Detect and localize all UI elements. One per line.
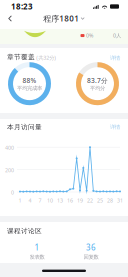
staticText: 1 — [18, 197, 21, 204]
staticText: 程序1801 — [43, 13, 79, 24]
staticText: 课程讨论区 — [7, 227, 42, 235]
staticText: 25 — [97, 197, 103, 204]
staticText: 13 — [57, 197, 63, 204]
staticText: 平均完成率 — [17, 85, 42, 91]
staticText: 0 — [11, 189, 14, 196]
staticText: 0人 — [113, 32, 121, 39]
staticText: 详情 — [110, 55, 120, 61]
staticText: 7 — [38, 197, 41, 204]
staticText: 详情 — [110, 124, 120, 130]
staticText: 200 — [5, 167, 14, 174]
button[interactable]: Back — [4, 13, 16, 24]
button[interactable]: 详情 — [109, 124, 121, 130]
staticText: 0% — [86, 32, 93, 39]
button[interactable]: 36 — [74, 242, 108, 260]
staticText: 回复数 — [83, 254, 98, 260]
staticText: 16 — [67, 197, 73, 204]
staticText: 22 — [87, 197, 93, 204]
staticText: (共32分) — [36, 54, 56, 61]
staticText: 本月访问量 — [7, 123, 42, 131]
button[interactable]: 程序1801 — [40, 11, 88, 26]
staticText: 83.7分 — [87, 76, 108, 85]
staticText: 10 — [47, 197, 53, 204]
staticText: 88% — [22, 76, 36, 85]
staticText: 36 — [86, 242, 96, 253]
staticText: 400 — [5, 144, 14, 151]
staticText: 18:23 — [11, 1, 33, 12]
button[interactable]: 详情 — [109, 55, 121, 61]
staticText: 4 — [28, 197, 31, 204]
staticText: 19 — [77, 197, 83, 204]
button[interactable]: 1 — [20, 242, 54, 260]
staticText: 31 — [117, 197, 123, 204]
staticText: 平均分 — [90, 85, 105, 91]
staticText: 发表数 — [29, 254, 44, 260]
staticText: 28 — [107, 197, 113, 204]
staticText: 章节覆盖 — [7, 53, 35, 61]
staticText: 1 — [34, 242, 39, 253]
